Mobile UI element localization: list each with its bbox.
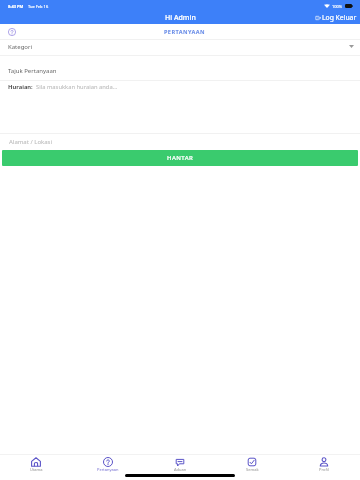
staticText: Semak xyxy=(246,467,259,472)
staticText: Sila masukkan huraian anda... xyxy=(36,83,118,91)
button[interactable]: Pertanyaan xyxy=(72,455,144,474)
staticText: Aduan xyxy=(174,467,187,472)
staticText: PERTANYAAN xyxy=(164,28,205,36)
button[interactable]: Utama xyxy=(0,455,72,474)
other: Pilih kategori xyxy=(349,45,354,48)
staticText: Tue Feb 16 xyxy=(28,4,49,9)
button[interactable]: Semak xyxy=(216,455,288,474)
staticText: Tajuk Pertanyaan xyxy=(8,67,57,75)
staticText: Alamat / Lokasi xyxy=(9,138,53,146)
button[interactable]: HANTAR xyxy=(2,150,358,166)
staticText: Hi Admin xyxy=(165,13,196,23)
staticText: Utama xyxy=(30,467,43,472)
staticText: Huraian: xyxy=(8,83,33,91)
staticText: Pertanyaan xyxy=(97,467,119,472)
staticText: Log Keluar xyxy=(322,13,357,22)
button[interactable]: Profil xyxy=(288,455,360,474)
other: Pertanyaan xyxy=(8,28,16,36)
button[interactable]: Aduan xyxy=(144,455,216,474)
staticText: Profil xyxy=(319,467,329,472)
button[interactable]: Kategori xyxy=(0,40,360,55)
button[interactable]: Log Keluar xyxy=(309,11,360,24)
staticText: 8:43 PM xyxy=(8,4,24,9)
staticText: HANTAR xyxy=(167,154,194,162)
staticText: 100% xyxy=(332,4,343,9)
staticText: Kategori xyxy=(8,43,32,51)
